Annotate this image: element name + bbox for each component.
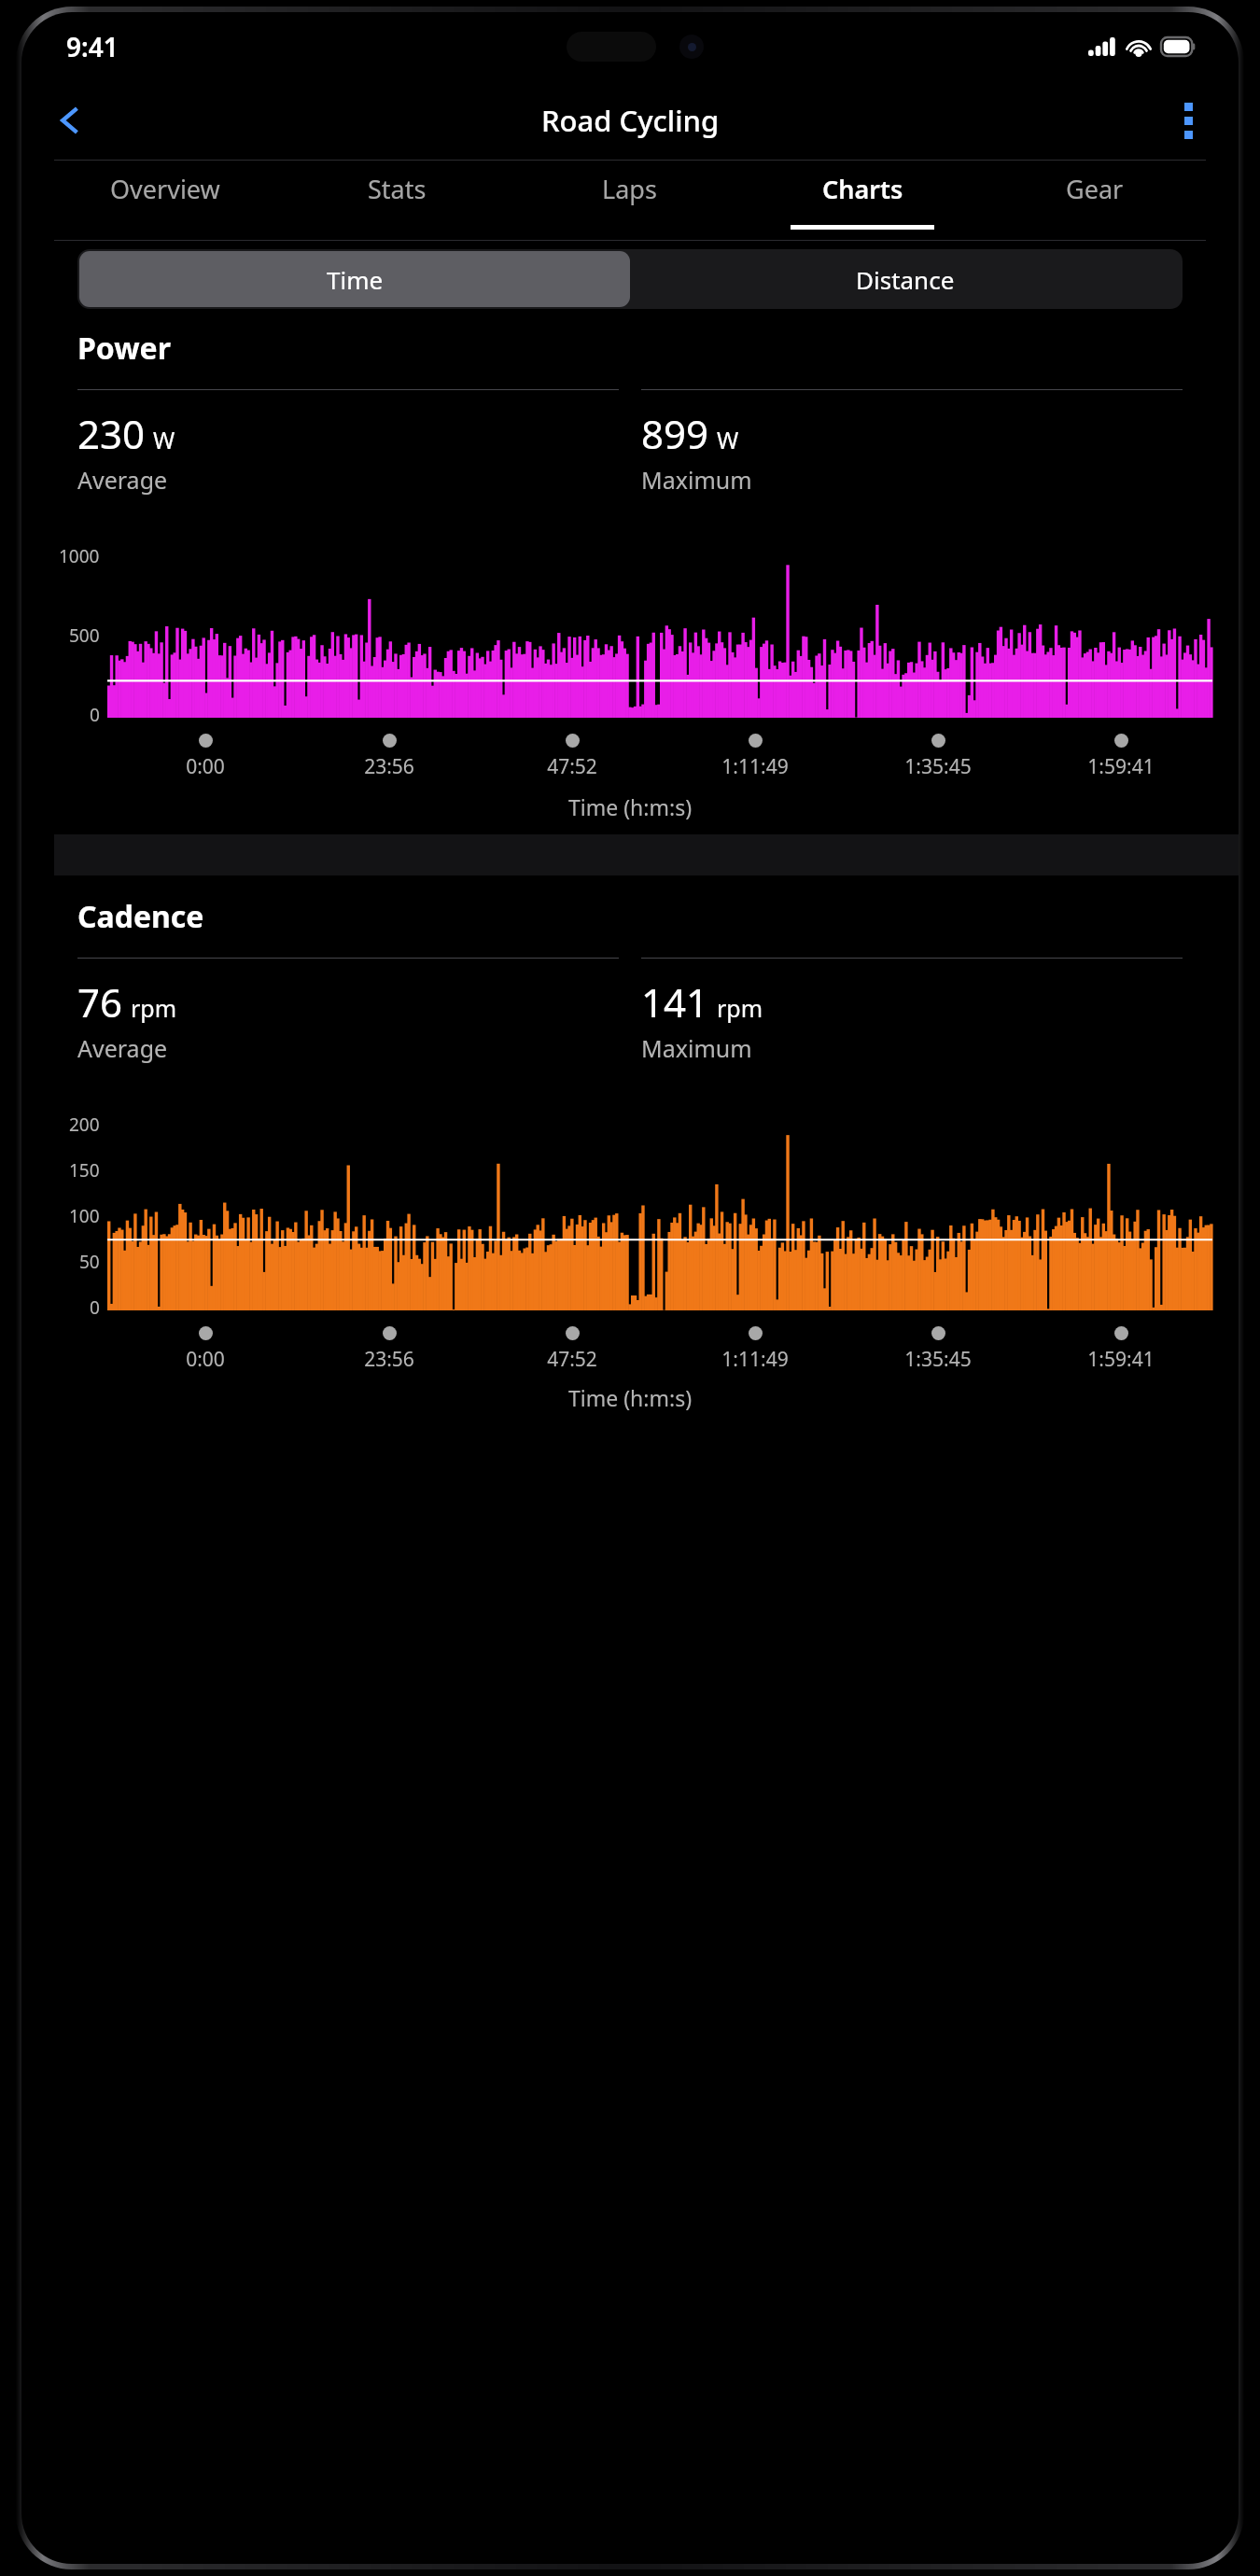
staticText: Charts: [822, 172, 903, 206]
staticText: 1:35:45: [904, 753, 972, 780]
staticText: 0:00: [186, 753, 225, 780]
staticText: Overview: [110, 172, 220, 206]
button[interactable]: Time: [79, 251, 630, 307]
staticText: Laps: [602, 172, 657, 206]
staticText: Power: [77, 328, 172, 369]
staticText: Cadence: [77, 896, 204, 937]
staticText: 9:41: [66, 29, 119, 64]
staticText: 23:56: [364, 753, 414, 780]
staticText: Road Cycling: [541, 101, 720, 140]
staticText: 23:56: [364, 1346, 414, 1373]
button[interactable]: Back: [44, 94, 96, 147]
staticText: Average: [77, 1032, 168, 1064]
button[interactable]: Laps: [513, 161, 746, 241]
staticText: 47:52: [547, 753, 597, 780]
button[interactable]: Stats: [281, 161, 513, 241]
staticText: 141: [641, 975, 709, 1029]
staticText: 500: [69, 623, 100, 648]
staticText: Distance: [856, 263, 955, 296]
staticText: 47:52: [547, 1346, 597, 1373]
staticText: 0:00: [186, 1346, 225, 1373]
staticText: Gear: [1066, 172, 1124, 206]
staticText: 1:35:45: [904, 1346, 972, 1373]
staticText: W: [717, 424, 739, 455]
staticText: Time (h:m:s): [568, 1383, 693, 1412]
staticText: 1:59:41: [1087, 753, 1155, 780]
staticText: 0: [90, 1295, 100, 1320]
staticText: 150: [69, 1158, 100, 1183]
staticText: 76: [77, 975, 123, 1029]
staticText: rpm: [717, 992, 763, 1024]
staticText: Maximum: [641, 1032, 752, 1064]
staticText: Maximum: [641, 464, 752, 496]
button[interactable]: Gear: [978, 161, 1211, 241]
staticText: Stats: [368, 172, 427, 206]
staticText: W: [153, 424, 175, 455]
button[interactable]: Charts: [746, 161, 978, 241]
staticText: 1:11:49: [721, 1346, 789, 1373]
staticText: 899: [641, 407, 709, 460]
button[interactable]: Distance: [630, 251, 1181, 307]
staticText: 100: [69, 1204, 100, 1228]
staticText: 200: [69, 1113, 100, 1137]
staticText: 1000: [59, 544, 100, 568]
staticText: Time: [327, 263, 384, 296]
staticText: 50: [79, 1250, 100, 1274]
button[interactable]: Overview: [49, 161, 281, 241]
button[interactable]: More options: [1162, 94, 1214, 147]
staticText: 0: [90, 703, 100, 727]
staticText: 1:11:49: [721, 753, 789, 780]
staticText: rpm: [131, 992, 177, 1024]
staticText: Average: [77, 464, 168, 496]
staticText: 230: [77, 407, 146, 460]
staticText: 1:59:41: [1087, 1346, 1155, 1373]
staticText: Time (h:m:s): [568, 792, 693, 821]
